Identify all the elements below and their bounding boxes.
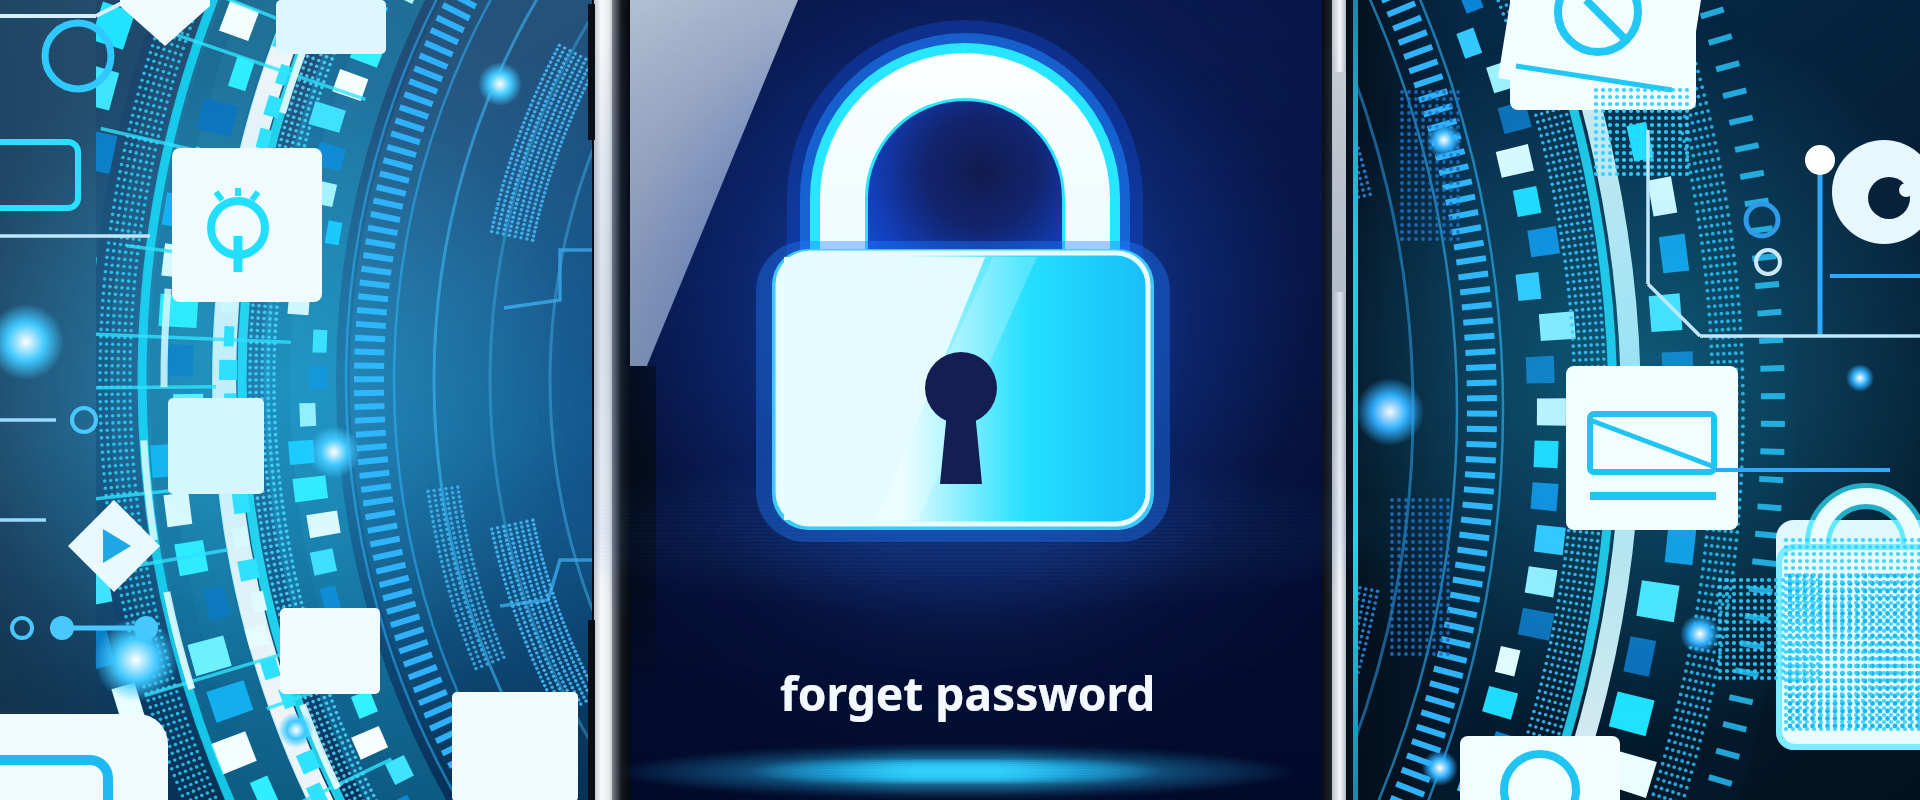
button[interactable]: forget password [760,648,1172,726]
button[interactable]: Reset password [746,748,1166,794]
button[interactable]: Locked account [770,40,1160,540]
